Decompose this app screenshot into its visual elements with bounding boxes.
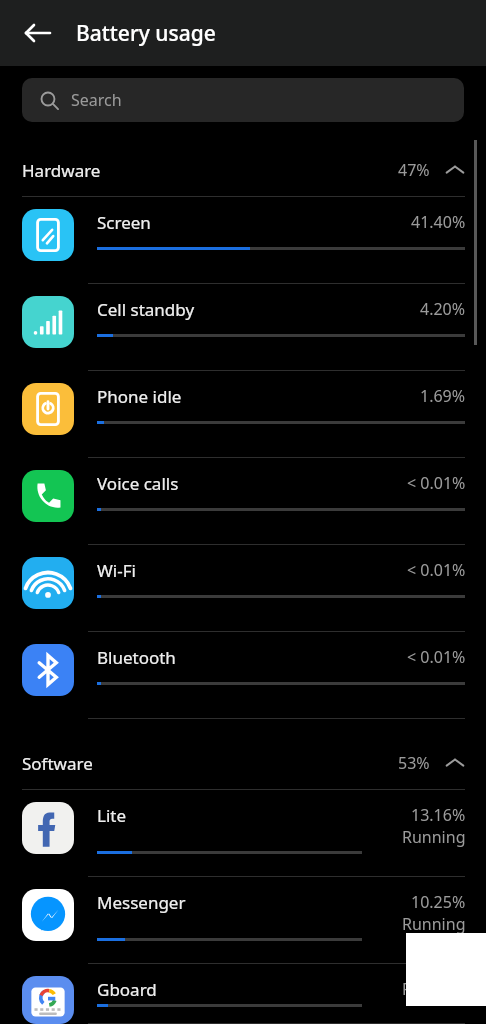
staticText: 13.16% bbox=[411, 804, 466, 826]
staticText: Battery usage bbox=[76, 19, 216, 48]
button[interactable]: Hardware bbox=[0, 144, 486, 197]
button[interactable]: Search bbox=[22, 78, 464, 122]
staticText: 47% bbox=[398, 159, 430, 181]
staticText: Wi-Fi bbox=[97, 559, 136, 582]
button[interactable]: Gboard bbox=[0, 964, 486, 1024]
staticText: < 0.01% bbox=[407, 646, 466, 668]
button[interactable]: Bluetooth bbox=[0, 632, 486, 719]
staticText: Screen bbox=[97, 211, 151, 234]
button[interactable]: Software bbox=[0, 737, 486, 790]
staticText: 4.20% bbox=[420, 298, 466, 320]
staticText: Running bbox=[402, 913, 466, 935]
staticText: Running bbox=[402, 978, 466, 1000]
staticText: Software bbox=[22, 752, 93, 775]
staticText: Messenger bbox=[97, 891, 186, 914]
button[interactable]: Phone idle bbox=[0, 371, 486, 458]
staticText: Phone idle bbox=[97, 385, 182, 408]
button[interactable]: Voice calls bbox=[0, 458, 486, 545]
staticText: Bluetooth bbox=[97, 646, 176, 669]
staticText: 1.69% bbox=[420, 385, 466, 407]
staticText: Hardware bbox=[22, 159, 101, 182]
staticText: 41.40% bbox=[411, 211, 466, 233]
staticText: < 0.01% bbox=[407, 472, 466, 494]
staticText: 53% bbox=[398, 752, 430, 774]
button[interactable]: Lite bbox=[0, 790, 486, 877]
staticText: Cell standby bbox=[97, 298, 195, 321]
staticText: 10.25% bbox=[411, 891, 466, 913]
staticText: Lite bbox=[97, 804, 127, 827]
button[interactable]: Screen bbox=[0, 197, 486, 284]
button[interactable]: Wi-Fi bbox=[0, 545, 486, 632]
staticText: Gboard bbox=[97, 978, 157, 1001]
staticText: Voice calls bbox=[97, 472, 179, 495]
button[interactable]: Messenger bbox=[0, 877, 486, 964]
button[interactable]: Cell standby bbox=[0, 284, 486, 371]
staticText: Running bbox=[402, 826, 466, 848]
button[interactable]: Back bbox=[14, 9, 62, 57]
staticText: < 0.01% bbox=[407, 559, 466, 581]
staticText: Search bbox=[71, 89, 122, 111]
